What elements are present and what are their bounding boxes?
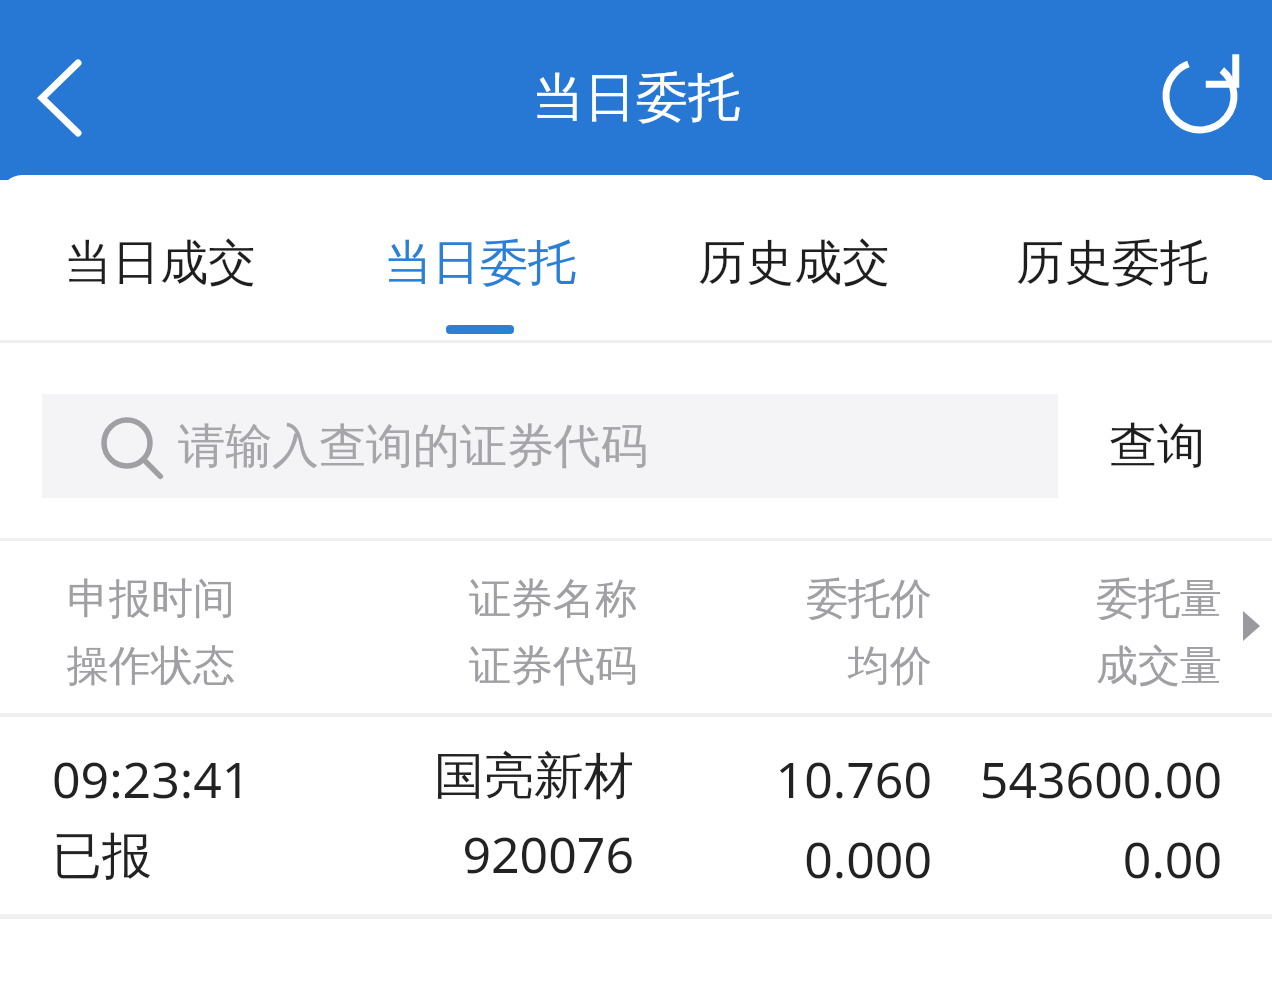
button[interactable]: 查询 xyxy=(1058,394,1256,498)
staticText: 证券名称 xyxy=(453,573,637,626)
button[interactable]: 当日成交 xyxy=(10,175,310,340)
staticText: 09:23:41 xyxy=(52,745,265,813)
staticText: 成交量 xyxy=(1080,640,1222,693)
staticText: 10.760 xyxy=(762,745,932,813)
staticText: 0.000 xyxy=(762,825,932,893)
button[interactable]: 09:23:41 xyxy=(0,717,1272,914)
staticText: 0.00 xyxy=(958,825,1222,893)
staticText: 申报时间 xyxy=(67,573,253,626)
staticText: 历史成交 xyxy=(698,233,890,293)
staticText: 请输入查询的证券代码 xyxy=(178,417,648,476)
staticText: 国亮新材 xyxy=(418,745,634,808)
staticText: 当日成交 xyxy=(64,233,256,293)
button[interactable]: 历史成交 xyxy=(644,175,944,340)
staticText: 查询 xyxy=(1109,416,1205,476)
staticText: 委托价 xyxy=(790,573,932,626)
button[interactable]: 请输入查询的证券代码 xyxy=(42,394,1058,498)
staticText: 均价 xyxy=(790,640,932,693)
other: More columns xyxy=(1238,601,1272,653)
button[interactable]: 当日委托 xyxy=(330,175,630,340)
staticText: 操作状态 xyxy=(67,640,253,693)
button[interactable]: 历史委托 xyxy=(962,175,1262,340)
staticText: 历史委托 xyxy=(1016,233,1208,293)
staticText: 920076 xyxy=(418,820,634,888)
staticText: 已报 xyxy=(52,825,265,888)
staticText: 当日委托 xyxy=(0,65,1272,131)
staticText: 委托量 xyxy=(1080,573,1222,626)
staticText: 543600.00 xyxy=(958,745,1222,813)
staticText: 证券代码 xyxy=(453,640,637,693)
button[interactable]: Back xyxy=(14,52,106,144)
button[interactable]: Refresh xyxy=(1154,48,1246,140)
staticText: 当日委托 xyxy=(384,233,576,293)
